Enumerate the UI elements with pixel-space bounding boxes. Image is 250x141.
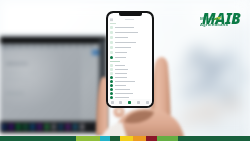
button[interactable] <box>110 35 150 40</box>
button[interactable]: Navigation item 2 <box>116 99 125 106</box>
button[interactable]: Navigation item 3 <box>125 99 134 106</box>
button[interactable] <box>110 45 150 50</box>
button[interactable]: Navigation item 5 <box>143 99 152 106</box>
button[interactable]: Menu <box>110 18 113 21</box>
staticText: Moldova Agroindbank <box>200 16 242 28</box>
button[interactable] <box>110 91 150 95</box>
button[interactable] <box>110 55 150 59</box>
button[interactable] <box>110 87 150 91</box>
button[interactable] <box>110 30 150 35</box>
button[interactable] <box>110 40 150 45</box>
button[interactable] <box>110 79 150 83</box>
button[interactable] <box>110 63 150 67</box>
button[interactable] <box>110 25 150 30</box>
button[interactable] <box>110 83 150 87</box>
staticText: MAIB <box>202 8 241 28</box>
button[interactable] <box>110 71 150 75</box>
button[interactable]: Navigation item 4 <box>134 99 143 106</box>
button[interactable] <box>110 75 150 79</box>
button[interactable]: Navigation item 1 <box>108 99 116 106</box>
button[interactable] <box>110 95 150 99</box>
button[interactable] <box>110 50 150 55</box>
button[interactable] <box>110 67 150 71</box>
